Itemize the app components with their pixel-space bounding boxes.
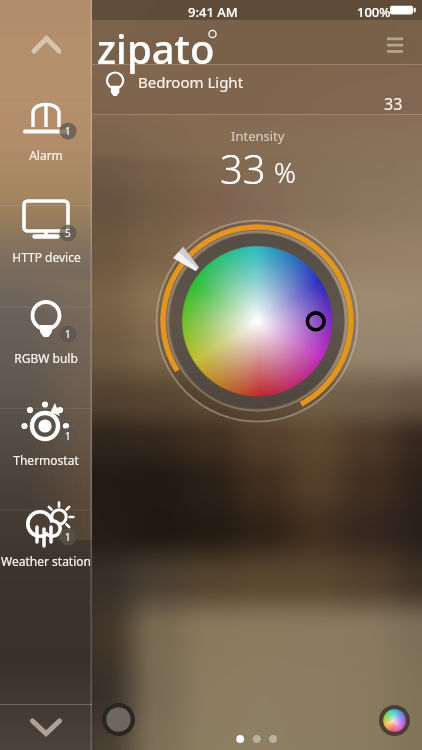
staticText: % xyxy=(274,154,296,191)
button[interactable]: Colour wheel xyxy=(152,216,362,426)
button[interactable]: 1 xyxy=(0,297,92,387)
staticText: Alarm xyxy=(29,147,63,163)
staticText: Thermostat xyxy=(13,452,79,468)
staticText: Weather station xyxy=(1,553,91,569)
button[interactable]: 1 xyxy=(0,94,92,184)
staticText: 1 xyxy=(65,124,71,138)
button[interactable]: 5 xyxy=(0,196,92,286)
staticText: 9:41 AM xyxy=(188,3,238,21)
staticText: 33 xyxy=(220,141,266,195)
staticText: 33 xyxy=(384,93,403,115)
staticText: RGBW bulb xyxy=(14,350,78,366)
button[interactable]: Bedroom Light xyxy=(92,64,422,114)
button[interactable]: Scroll down xyxy=(0,704,92,750)
staticText: 1 xyxy=(65,429,71,443)
staticText: 100% xyxy=(357,3,391,21)
button[interactable]: 1 xyxy=(0,399,92,489)
button[interactable]: Colour picker xyxy=(379,705,410,736)
button[interactable]: Power xyxy=(102,703,135,736)
staticText: zipato xyxy=(97,21,215,75)
staticText: 1 xyxy=(65,327,71,341)
staticText: 1 xyxy=(65,530,71,544)
button[interactable]: 1 xyxy=(0,500,92,590)
button[interactable]: Scroll up xyxy=(30,33,63,66)
staticText: Bedroom Light xyxy=(138,72,244,92)
button[interactable]: Menu xyxy=(381,31,409,59)
staticText: Intensity xyxy=(231,127,285,145)
staticText: 5 xyxy=(65,226,71,240)
staticText: HTTP device xyxy=(12,249,81,265)
